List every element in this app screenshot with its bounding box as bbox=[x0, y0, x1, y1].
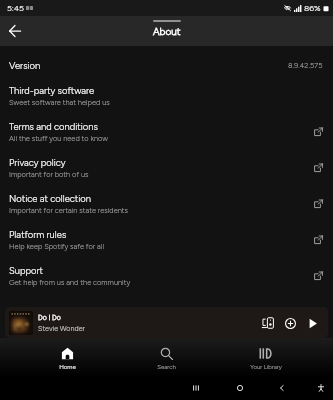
staticText: All the stuff you need to know bbox=[9, 134, 108, 143]
button[interactable]: Do I Do bbox=[5, 307, 328, 338]
button[interactable]: Terms and conditions bbox=[0, 114, 333, 150]
staticText: 86% bbox=[304, 3, 321, 13]
button[interactable]: Connect to a device bbox=[259, 314, 277, 332]
button[interactable]: Notice at collection bbox=[0, 186, 333, 222]
staticText: Platform rules bbox=[9, 229, 67, 240]
staticText: 5:45 bbox=[7, 3, 24, 13]
staticText: Notice at collection bbox=[9, 193, 92, 204]
staticText: About bbox=[153, 25, 181, 37]
button[interactable]: Back bbox=[277, 383, 287, 393]
staticText: Terms and conditions bbox=[9, 121, 98, 132]
staticText: Privacy policy bbox=[9, 157, 66, 168]
button[interactable]: Your Library bbox=[216, 338, 315, 377]
button[interactable]: Version bbox=[0, 53, 333, 78]
button[interactable]: Recents bbox=[191, 383, 201, 393]
staticText: Sweet software that helped us bbox=[9, 98, 110, 107]
button[interactable]: Accessibility bbox=[316, 383, 326, 393]
button[interactable]: Home bbox=[235, 383, 245, 393]
button[interactable]: Home bbox=[18, 338, 117, 377]
button[interactable]: Support bbox=[0, 258, 333, 294]
staticText: Stevie Wonder bbox=[38, 324, 85, 333]
button[interactable]: Platform rules bbox=[0, 222, 333, 258]
staticText: Version bbox=[9, 60, 41, 71]
button[interactable]: Add to playlist bbox=[281, 314, 299, 332]
staticText: Help keep Spotify safe for all bbox=[9, 242, 104, 251]
staticText: Do I Do bbox=[38, 313, 61, 321]
staticText: Search bbox=[157, 363, 176, 370]
staticText: Support bbox=[9, 265, 43, 276]
staticText: Home bbox=[59, 363, 76, 370]
staticText: Get help from us and the community bbox=[9, 278, 131, 287]
button[interactable]: Privacy policy bbox=[0, 150, 333, 186]
staticText: Your Library bbox=[250, 363, 282, 370]
button[interactable]: Play bbox=[303, 314, 321, 332]
staticText: Third-party software bbox=[9, 85, 95, 96]
staticText: Important for certain state residents bbox=[9, 206, 129, 215]
staticText: 8.9.42.575 bbox=[288, 61, 323, 70]
button[interactable]: Search bbox=[117, 338, 216, 377]
button[interactable]: Third-party software bbox=[0, 78, 333, 114]
button[interactable]: Back bbox=[3, 19, 27, 43]
staticText: Important for both of us bbox=[9, 170, 89, 179]
